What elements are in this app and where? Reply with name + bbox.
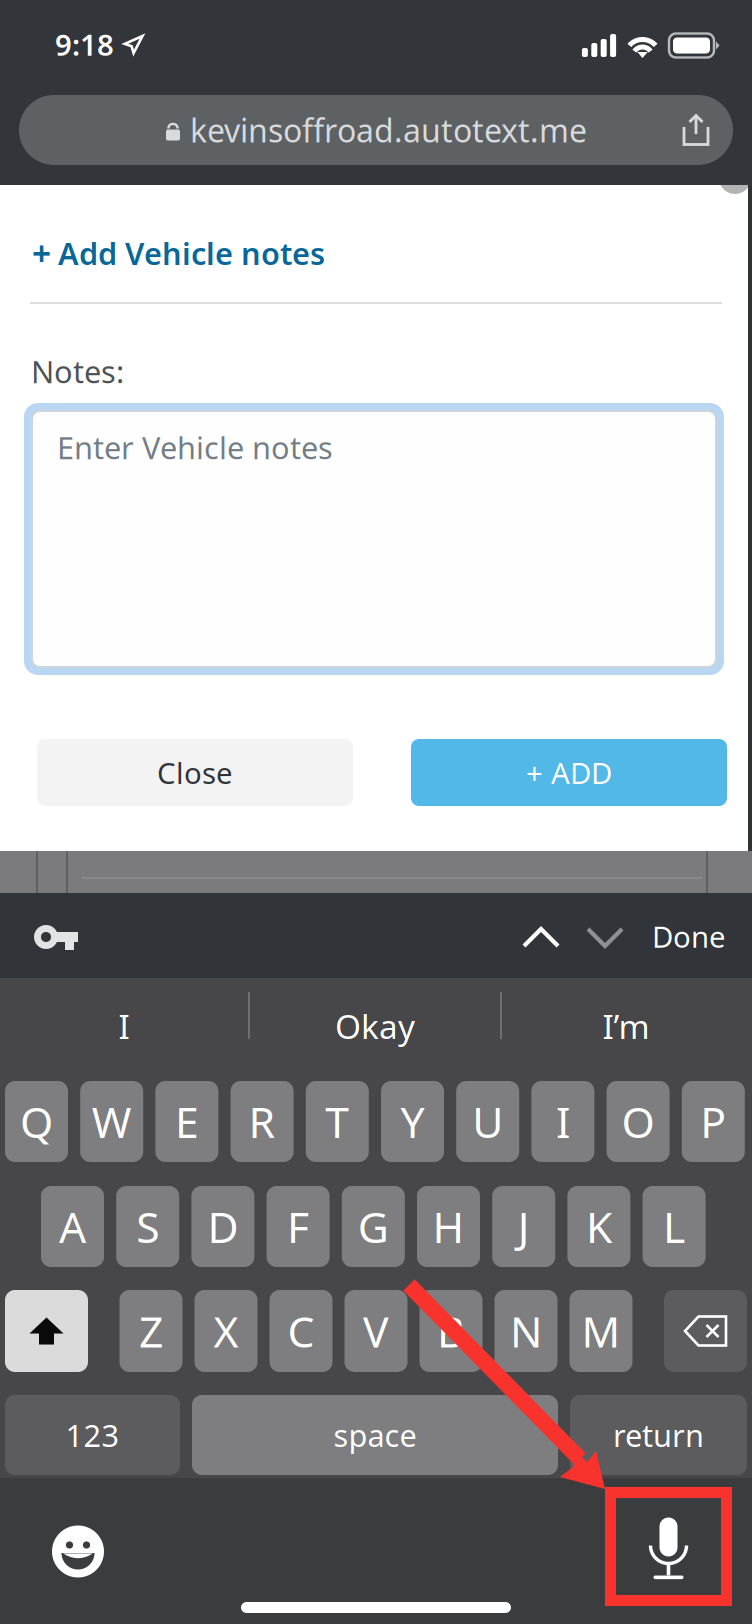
staticText: Close [157, 753, 233, 792]
staticText: Okay [335, 1004, 415, 1048]
button[interactable]: F [267, 1186, 330, 1267]
button[interactable]: K [567, 1186, 630, 1267]
staticText: P [700, 1093, 726, 1150]
staticText: U [472, 1093, 503, 1150]
button[interactable]: Z [119, 1290, 182, 1372]
staticText: D [207, 1198, 238, 1255]
button[interactable]: Shift [5, 1290, 88, 1372]
button[interactable]: Delete [664, 1290, 747, 1372]
button[interactable]: T [306, 1081, 369, 1162]
button[interactable]: S [116, 1186, 179, 1267]
button[interactable]: M [569, 1290, 632, 1372]
staticText: Done [652, 917, 726, 956]
button[interactable]: Q [5, 1081, 68, 1162]
button[interactable]: N [494, 1290, 557, 1372]
button[interactable]: Previous field [522, 927, 560, 948]
staticText: M [581, 1303, 620, 1359]
staticText: space [333, 1415, 416, 1455]
staticText: I [118, 1004, 129, 1048]
button[interactable]: Close [37, 739, 353, 806]
staticText: Enter Vehicle notes [57, 427, 333, 468]
staticText: Notes: [31, 351, 124, 392]
staticText: 9:18 [55, 25, 114, 64]
staticText: return [613, 1415, 704, 1455]
button[interactable]: R [231, 1081, 294, 1162]
button[interactable]: kevinsoffroad.autotext.me [19, 95, 733, 165]
button[interactable]: P [682, 1081, 745, 1162]
staticText: L [663, 1198, 685, 1255]
staticText: I’m [602, 1004, 649, 1048]
button[interactable]: W [80, 1081, 143, 1162]
button[interactable]: I [0, 989, 248, 1063]
button[interactable]: Dictation [605, 1487, 732, 1606]
button[interactable]: + ADD [411, 739, 727, 806]
staticText: kevinsoffroad.autotext.me [190, 109, 587, 151]
button[interactable]: Y [381, 1081, 444, 1162]
staticText: X [213, 1303, 238, 1359]
button[interactable]: V [344, 1290, 407, 1372]
button[interactable]: Done [652, 917, 726, 956]
staticText: S [136, 1198, 159, 1255]
button[interactable]: D [191, 1186, 254, 1267]
button[interactable]: Passwords [34, 925, 79, 950]
staticText: T [325, 1093, 349, 1150]
staticText: B [437, 1303, 465, 1359]
button[interactable]: O [607, 1081, 670, 1162]
staticText: Q [20, 1093, 53, 1150]
staticText: G [358, 1198, 389, 1255]
button[interactable]: E [155, 1081, 218, 1162]
staticText: 123 [65, 1415, 119, 1455]
button[interactable]: L [643, 1186, 706, 1267]
staticText: Y [400, 1093, 424, 1150]
staticText: W [92, 1093, 132, 1150]
staticText: C [287, 1303, 314, 1359]
staticText: N [510, 1303, 542, 1359]
staticText: I [556, 1093, 570, 1150]
staticText: J [518, 1198, 530, 1255]
button[interactable]: X [194, 1290, 257, 1372]
button[interactable]: + [32, 231, 325, 275]
button[interactable]: B [419, 1290, 482, 1372]
button[interactable]: U [456, 1081, 519, 1162]
staticText: Z [139, 1303, 163, 1359]
button[interactable]: A [41, 1186, 104, 1267]
button[interactable]: Okay [250, 989, 500, 1063]
staticText: V [363, 1303, 389, 1359]
staticText: O [622, 1093, 655, 1150]
staticText: Add Vehicle notes [58, 233, 325, 273]
staticText: H [432, 1198, 464, 1255]
staticText: A [59, 1198, 86, 1255]
button[interactable]: space [192, 1395, 558, 1475]
button[interactable]: J [492, 1186, 555, 1267]
button[interactable]: Emoji keyboard [52, 1525, 104, 1578]
button[interactable]: G [342, 1186, 405, 1267]
staticText: F [287, 1198, 309, 1255]
button[interactable]: Next field [586, 927, 624, 948]
button[interactable]: I [531, 1081, 594, 1162]
staticText: + ADD [526, 753, 612, 792]
button[interactable]: 123 [5, 1395, 180, 1475]
staticText: E [175, 1093, 199, 1150]
staticText: + [32, 231, 51, 275]
button[interactable]: I’m [502, 989, 750, 1063]
button[interactable]: C [269, 1290, 332, 1372]
staticText: K [586, 1198, 612, 1255]
button[interactable]: return [570, 1395, 747, 1475]
button[interactable]: H [417, 1186, 480, 1267]
staticText: R [249, 1093, 276, 1150]
